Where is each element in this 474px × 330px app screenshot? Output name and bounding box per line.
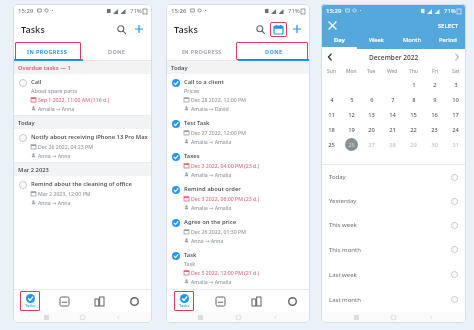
- button[interactable]: 29: [407, 138, 420, 151]
- button[interactable]: 19: [345, 123, 358, 136]
- button[interactable]: Task: [166, 288, 310, 289]
- button[interactable]: Projects: [238, 290, 274, 312]
- button[interactable]: Search: [252, 21, 268, 37]
- button[interactable]: Inbox: [202, 290, 238, 312]
- button[interactable]: 10: [449, 93, 462, 106]
- button[interactable]: Call to a client: [166, 74, 310, 115]
- button[interactable]: 20: [365, 123, 378, 136]
- button[interactable]: This week: [321, 213, 466, 237]
- button[interactable]: 2: [428, 78, 441, 91]
- button[interactable]: 25: [325, 138, 338, 151]
- button[interactable]: 30: [428, 138, 441, 151]
- button[interactable]: 26: [345, 138, 358, 151]
- button[interactable]: Taxes: [166, 148, 310, 181]
- button[interactable]: 24: [449, 123, 462, 136]
- button[interactable]: Today: [321, 165, 466, 189]
- button[interactable]: 17: [449, 108, 462, 121]
- button[interactable]: Month: [394, 33, 430, 47]
- button[interactable]: 23: [428, 123, 441, 136]
- button[interactable]: Day: [321, 33, 358, 47]
- button[interactable]: Last month: [321, 287, 466, 312]
- staticText: 28: [389, 141, 396, 149]
- button[interactable]: Last week: [321, 262, 466, 287]
- staticText: Agree on the price: [184, 218, 237, 226]
- button[interactable]: Close: [326, 19, 338, 31]
- button[interactable]: Inbox: [47, 290, 82, 312]
- staticText: 14: [389, 111, 396, 119]
- staticText: DONE: [108, 48, 126, 55]
- staticText: 7: [391, 96, 395, 104]
- staticText: Tue: [367, 68, 376, 75]
- button[interactable]: Settings: [117, 290, 152, 312]
- button[interactable]: Settings: [274, 290, 310, 312]
- button[interactable]: 6: [365, 93, 378, 106]
- staticText: Thu: [409, 68, 418, 75]
- staticText: 71%: [288, 7, 300, 15]
- button[interactable]: 22: [407, 123, 420, 136]
- staticText: Test Task: [184, 119, 210, 127]
- button[interactable]: Calendar: [270, 22, 287, 37]
- staticText: 11: [328, 111, 335, 119]
- button[interactable]: Agree on the price: [166, 214, 310, 247]
- button[interactable]: 16: [428, 108, 441, 121]
- button[interactable]: 31: [449, 138, 462, 151]
- button[interactable]: Remind about the cleaning of office: [13, 176, 152, 209]
- button[interactable]: Notify about receiving iPhone 13 Pro Max: [13, 129, 152, 162]
- button[interactable]: SELECT: [436, 20, 461, 31]
- button[interactable]: 5: [345, 93, 358, 106]
- button[interactable]: 4: [325, 93, 338, 106]
- button[interactable]: 3: [449, 78, 462, 91]
- staticText: 17: [452, 111, 459, 119]
- button[interactable]: Projects: [82, 290, 117, 312]
- button[interactable]: Period: [430, 33, 466, 47]
- button[interactable]: Test Task: [166, 115, 310, 148]
- staticText: 6: [370, 96, 374, 104]
- staticText: Month: [403, 36, 422, 44]
- button[interactable]: 18: [325, 123, 338, 136]
- button[interactable]: Tasks: [174, 291, 194, 311]
- button[interactable]: 11: [325, 108, 338, 121]
- button[interactable]: 13: [365, 108, 378, 121]
- button[interactable]: 7: [386, 93, 399, 106]
- button[interactable]: Remind about order: [166, 181, 310, 214]
- button[interactable]: 8: [407, 93, 420, 106]
- staticText: Dec 27 2022, 12:00 PM: [191, 129, 246, 136]
- staticText: 15:26: [171, 7, 187, 15]
- button[interactable]: Tasks: [20, 291, 40, 311]
- button[interactable]: Next month: [452, 52, 462, 62]
- button[interactable]: Search: [113, 21, 129, 37]
- button[interactable]: Previous month: [325, 52, 335, 62]
- button[interactable]: 12: [345, 108, 358, 121]
- button[interactable]: 9: [428, 93, 441, 106]
- button[interactable]: 14: [386, 108, 399, 121]
- button[interactable]: 1: [407, 78, 420, 91]
- staticText: 23: [431, 126, 438, 134]
- button[interactable]: Task: [166, 247, 310, 288]
- button[interactable]: 21: [386, 123, 399, 136]
- button[interactable]: This month: [321, 237, 466, 262]
- staticText: 10: [452, 96, 459, 104]
- button[interactable]: 28: [386, 138, 399, 151]
- button[interactable]: Yesterday: [321, 189, 466, 213]
- button[interactable]: IN PROGRESS: [166, 41, 238, 61]
- button[interactable]: Add task: [131, 21, 147, 37]
- staticText: 22: [410, 126, 417, 134]
- staticText: Amalia → David: [191, 105, 229, 112]
- staticText: 27: [368, 141, 375, 149]
- staticText: 9: [433, 96, 437, 104]
- button[interactable]: 15: [407, 108, 420, 121]
- staticText: Mar 2 2023: [18, 166, 49, 174]
- staticText: 13: [368, 111, 375, 119]
- staticText: Prices: [184, 87, 200, 94]
- button[interactable]: 27: [365, 138, 378, 151]
- button[interactable]: Add task: [289, 21, 305, 37]
- button[interactable]: IN PROGRESS: [13, 41, 82, 61]
- button[interactable]: Week: [358, 33, 394, 47]
- staticText: Task: [184, 260, 196, 267]
- button[interactable]: Call: [13, 74, 152, 115]
- staticText: Week: [369, 36, 384, 44]
- staticText: Today: [18, 119, 35, 127]
- staticText: About spare parts: [31, 87, 78, 94]
- button[interactable]: DONE: [238, 41, 310, 61]
- button[interactable]: DONE: [82, 41, 152, 61]
